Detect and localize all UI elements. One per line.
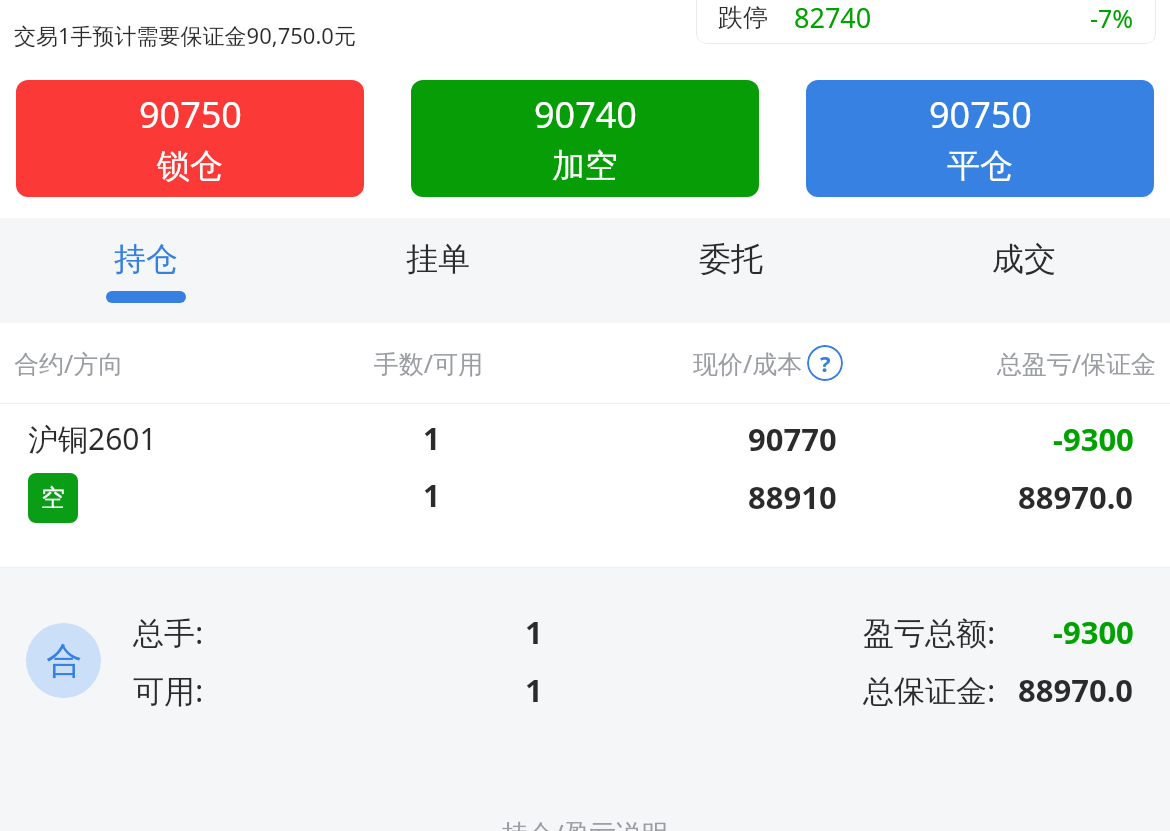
button[interactable]: 90740 bbox=[411, 80, 759, 197]
staticText: 1 bbox=[525, 611, 543, 653]
button[interactable]: 沪铜2601 bbox=[0, 404, 1170, 567]
staticText: 现价/成本 bbox=[693, 346, 803, 380]
staticText: 90750 bbox=[139, 90, 242, 139]
staticText: 88970.0 bbox=[1018, 476, 1134, 518]
staticText: 盈亏总额: bbox=[863, 611, 996, 653]
button[interactable]: 跌停 bbox=[696, 0, 1156, 44]
staticText: 总保证金: bbox=[863, 669, 996, 711]
staticText: 锁仓 bbox=[157, 145, 223, 187]
staticText: 88970.0 bbox=[1018, 669, 1134, 711]
staticText: 总手: bbox=[133, 611, 204, 653]
button[interactable]: 成交 bbox=[877, 218, 1170, 323]
staticText: -7% bbox=[1090, 1, 1134, 35]
staticText: 挂单 bbox=[406, 239, 470, 279]
button[interactable]: 合 bbox=[0, 568, 1170, 753]
staticText: 合约/方向 bbox=[14, 346, 295, 380]
staticText: 82740 bbox=[794, 0, 872, 36]
staticText: 1 bbox=[423, 418, 441, 459]
staticText: ? bbox=[820, 348, 831, 378]
staticText: 1 bbox=[525, 669, 543, 711]
staticText: 88910 bbox=[748, 476, 837, 518]
staticText: 手数/可用 bbox=[295, 346, 562, 380]
staticText: 90750 bbox=[929, 90, 1032, 139]
staticText: 加空 bbox=[552, 145, 618, 187]
staticText: 交易1手预计需要保证金90,750.0元 bbox=[14, 20, 356, 50]
staticText: 持仓 bbox=[114, 239, 178, 279]
staticText: 1 bbox=[423, 475, 441, 516]
button[interactable]: 帮助说明 bbox=[807, 345, 843, 381]
staticText: -9300 bbox=[1053, 418, 1134, 460]
button[interactable]: 持仓 bbox=[0, 218, 292, 323]
staticText: -9300 bbox=[1053, 611, 1134, 653]
staticText: 90740 bbox=[534, 90, 637, 139]
staticText: 总盈亏/保证金 bbox=[849, 346, 1156, 380]
staticText: 跌停 bbox=[718, 2, 768, 33]
staticText: 平仓 bbox=[947, 145, 1013, 187]
staticText: 沪铜2601 bbox=[28, 418, 157, 459]
staticText: 可用: bbox=[133, 669, 204, 711]
staticText: 空 bbox=[41, 483, 65, 513]
button[interactable]: 持仓/盈亏说明 bbox=[502, 815, 668, 831]
button[interactable]: 90750 bbox=[806, 80, 1154, 197]
button[interactable]: 挂单 bbox=[292, 218, 584, 323]
staticText: 90770 bbox=[748, 418, 837, 460]
staticText: 委托 bbox=[699, 239, 763, 279]
button[interactable]: 委托 bbox=[584, 218, 877, 323]
button[interactable]: 90750 bbox=[16, 80, 364, 197]
staticText: 成交 bbox=[992, 239, 1056, 279]
staticText: 合 bbox=[46, 638, 82, 683]
